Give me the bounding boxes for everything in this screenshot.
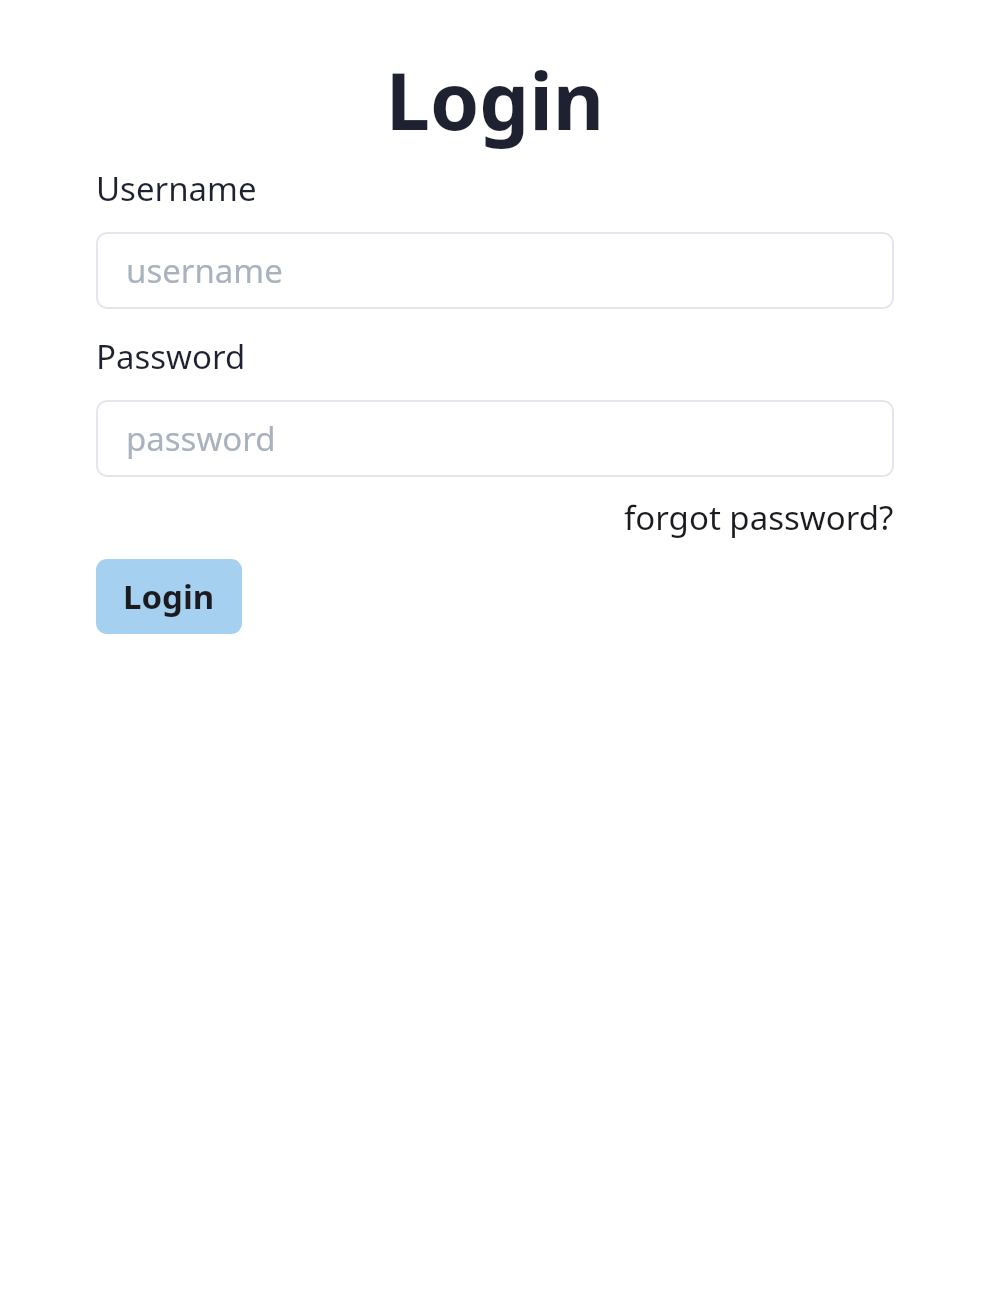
staticText: password	[126, 416, 276, 461]
staticText: Login	[123, 574, 215, 619]
button[interactable]: Password	[96, 334, 246, 379]
button[interactable]: password	[96, 400, 894, 477]
button[interactable]: Username	[96, 166, 257, 211]
button[interactable]: forgot password?	[624, 495, 894, 540]
staticText: username	[126, 248, 283, 293]
button[interactable]: Login	[96, 559, 242, 634]
staticText: Login	[96, 46, 894, 154]
button[interactable]: username	[96, 232, 894, 309]
